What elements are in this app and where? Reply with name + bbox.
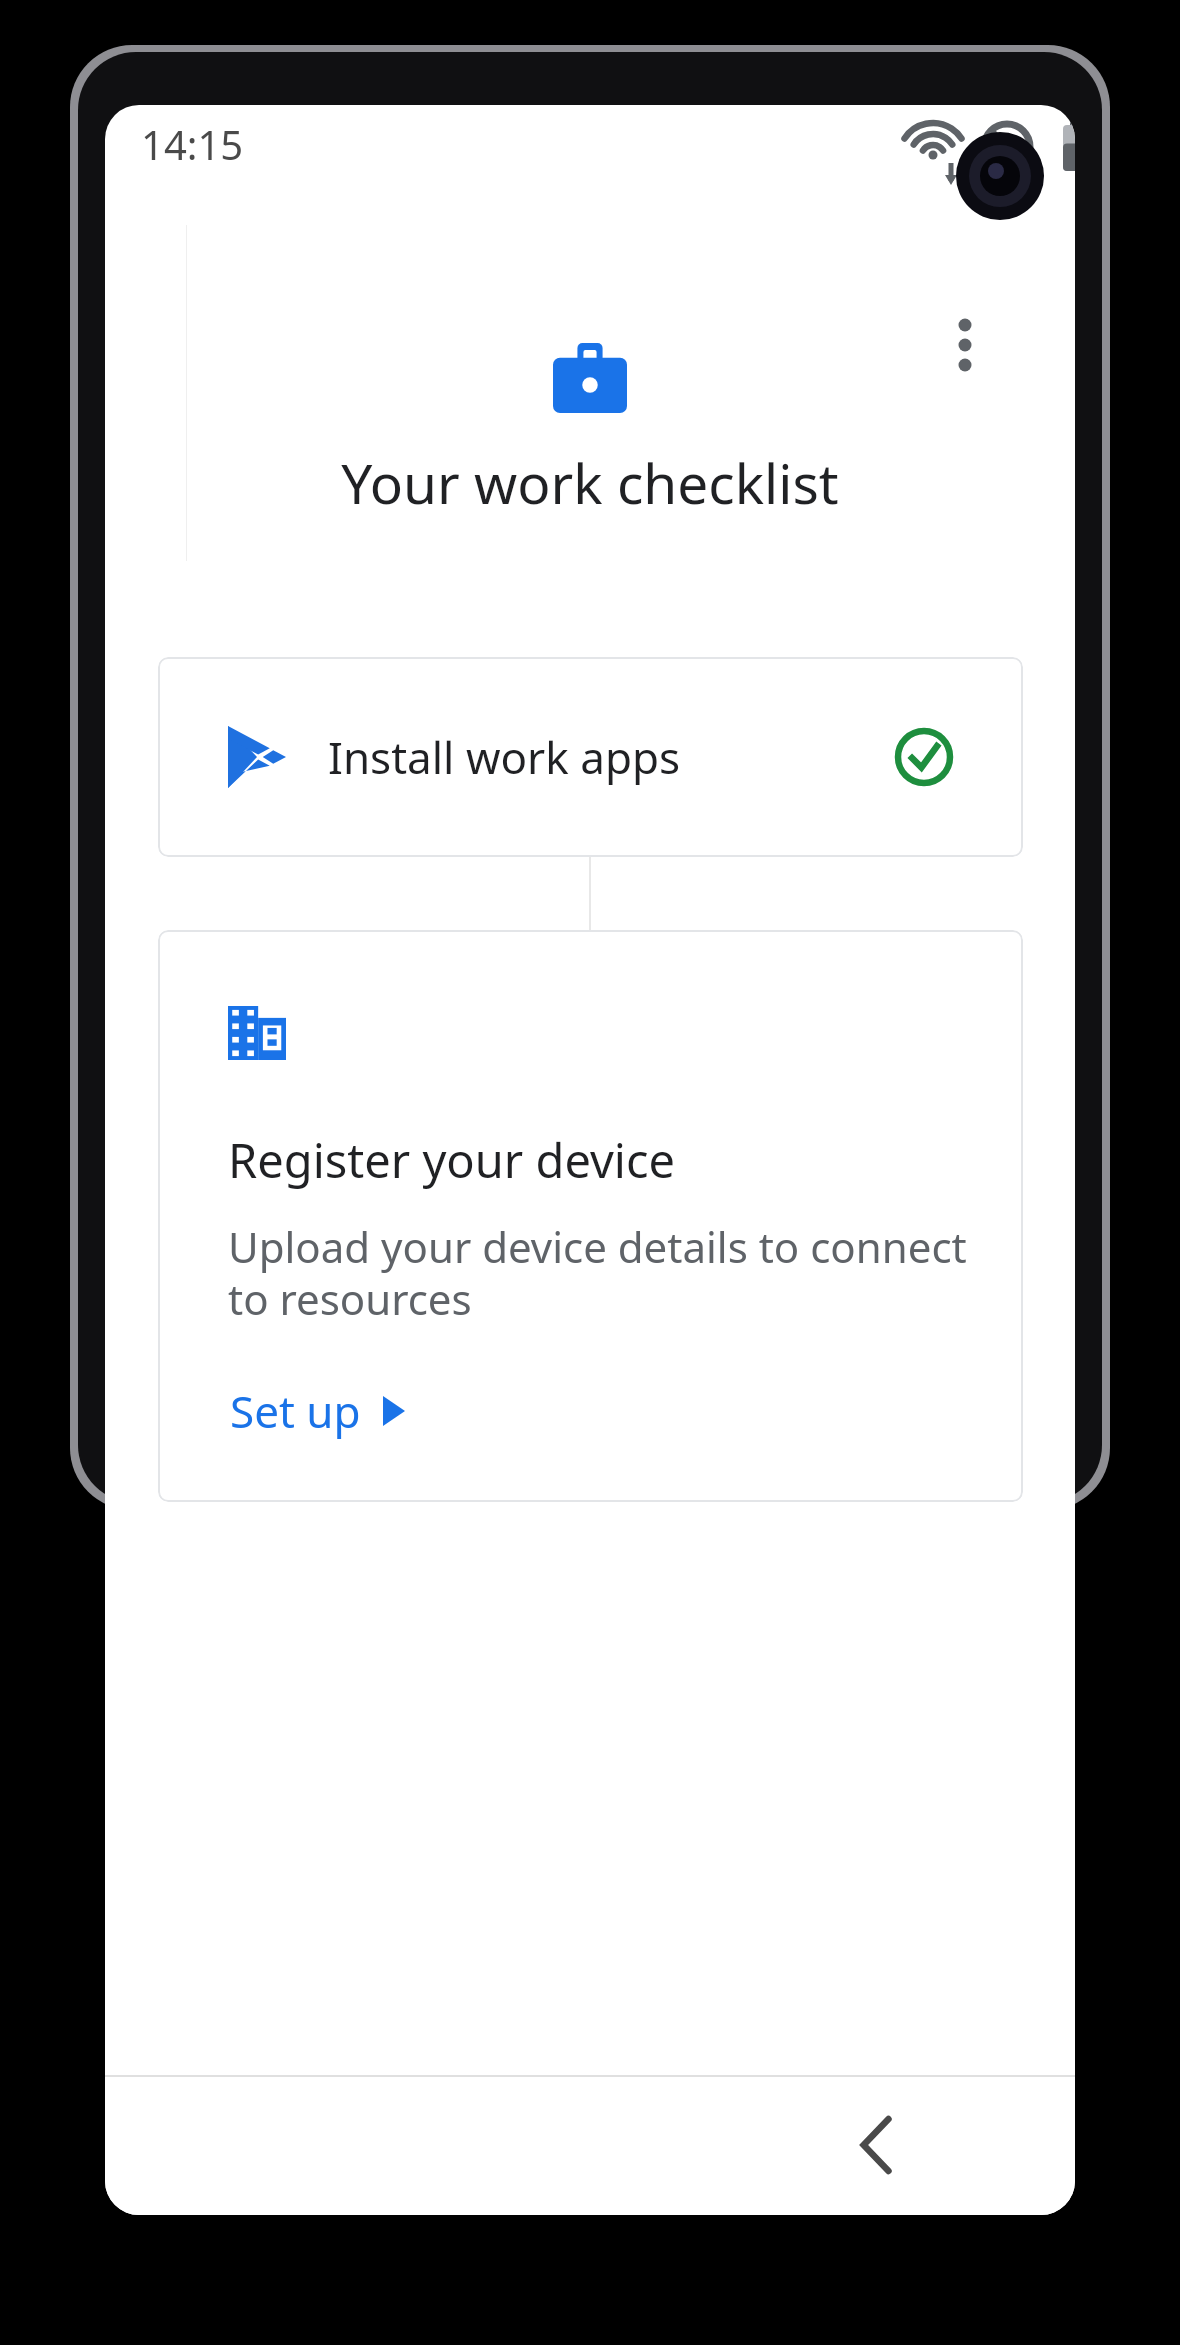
staticText: Install work apps — [328, 727, 681, 787]
staticText: Your work checklist — [341, 445, 839, 520]
staticText: Upload your device details to connect to… — [228, 1218, 967, 1327]
button[interactable]: Back — [827, 2097, 923, 2193]
staticText: 14:15 — [141, 117, 244, 171]
button[interactable]: Set up — [228, 1375, 407, 1447]
button[interactable]: Register your device — [158, 930, 1023, 1502]
button[interactable]: More options — [927, 307, 1003, 383]
button[interactable]: Install work apps — [158, 657, 1023, 857]
staticText: Set up — [230, 1381, 361, 1441]
staticText: Register your device — [228, 1128, 676, 1192]
